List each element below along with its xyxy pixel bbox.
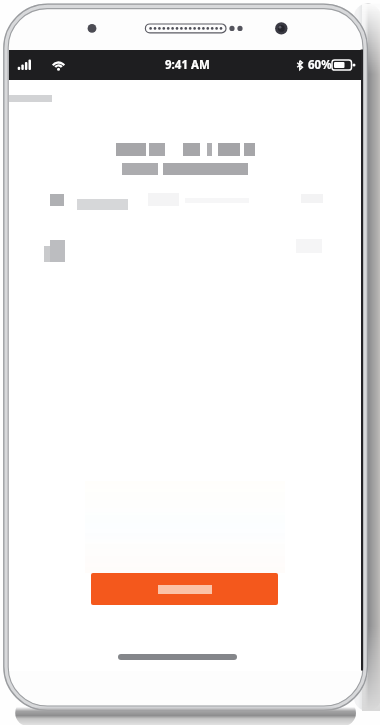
staticText: 9:41 AM [165,57,210,73]
staticText: 60% [308,57,332,73]
button[interactable] [91,573,278,605]
